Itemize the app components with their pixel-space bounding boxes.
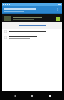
button[interactable]: Home bbox=[29, 93, 35, 99]
button[interactable]: Select item bbox=[4, 30, 7, 33]
button[interactable]: Send bbox=[3, 95, 61, 98]
button[interactable]: Advertisement bbox=[2, 14, 62, 22]
button[interactable]: Select item bbox=[2, 34, 62, 40]
button[interactable]: Back bbox=[12, 93, 18, 99]
button[interactable]: Recent apps bbox=[47, 93, 53, 99]
button[interactable] bbox=[2, 24, 62, 27]
button[interactable]: Select item bbox=[4, 36, 7, 39]
button[interactable]: Select item bbox=[2, 29, 62, 34]
button[interactable]: More options bbox=[55, 7, 60, 12]
